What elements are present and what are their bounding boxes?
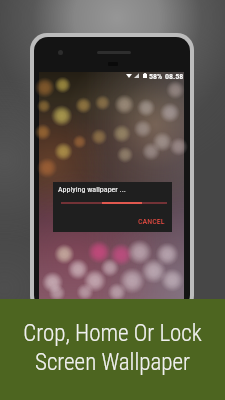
staticText: 58%	[149, 72, 163, 79]
staticText: Applying wallpaper ...	[58, 185, 126, 194]
staticText: CANCEL	[138, 217, 165, 226]
staticText: 08.58	[165, 72, 184, 79]
button[interactable]: CANCEL	[137, 214, 165, 228]
staticText: Crop, Home Or Lock Screen Wallpaper	[23, 320, 202, 376]
